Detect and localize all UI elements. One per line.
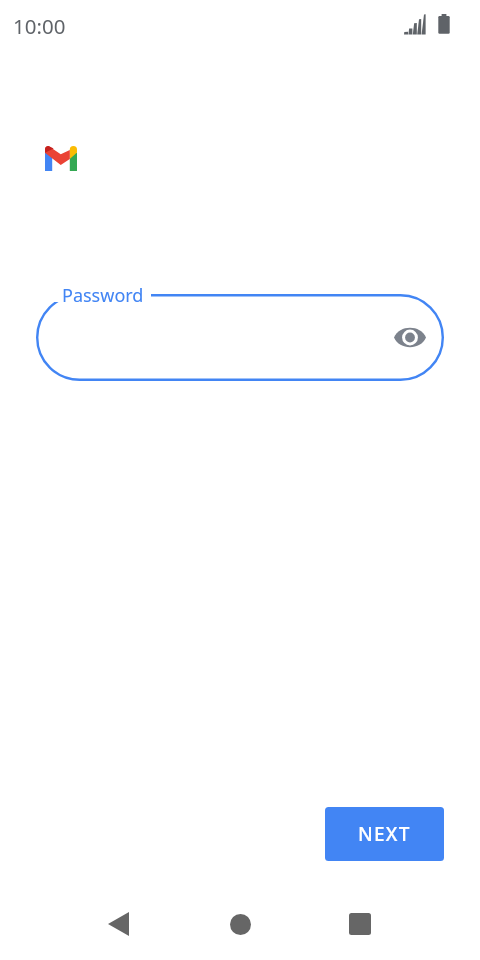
button[interactable]: NEXT (325, 807, 444, 861)
button[interactable]: Show password (388, 315, 432, 359)
button[interactable]: Back (94, 900, 142, 948)
staticText: Password (62, 283, 144, 308)
staticText: NEXT (358, 821, 411, 847)
button[interactable]: Home (216, 900, 264, 948)
staticText: 10:00 (13, 12, 66, 40)
button[interactable]: Recent apps (336, 900, 384, 948)
button[interactable] (36, 294, 444, 381)
